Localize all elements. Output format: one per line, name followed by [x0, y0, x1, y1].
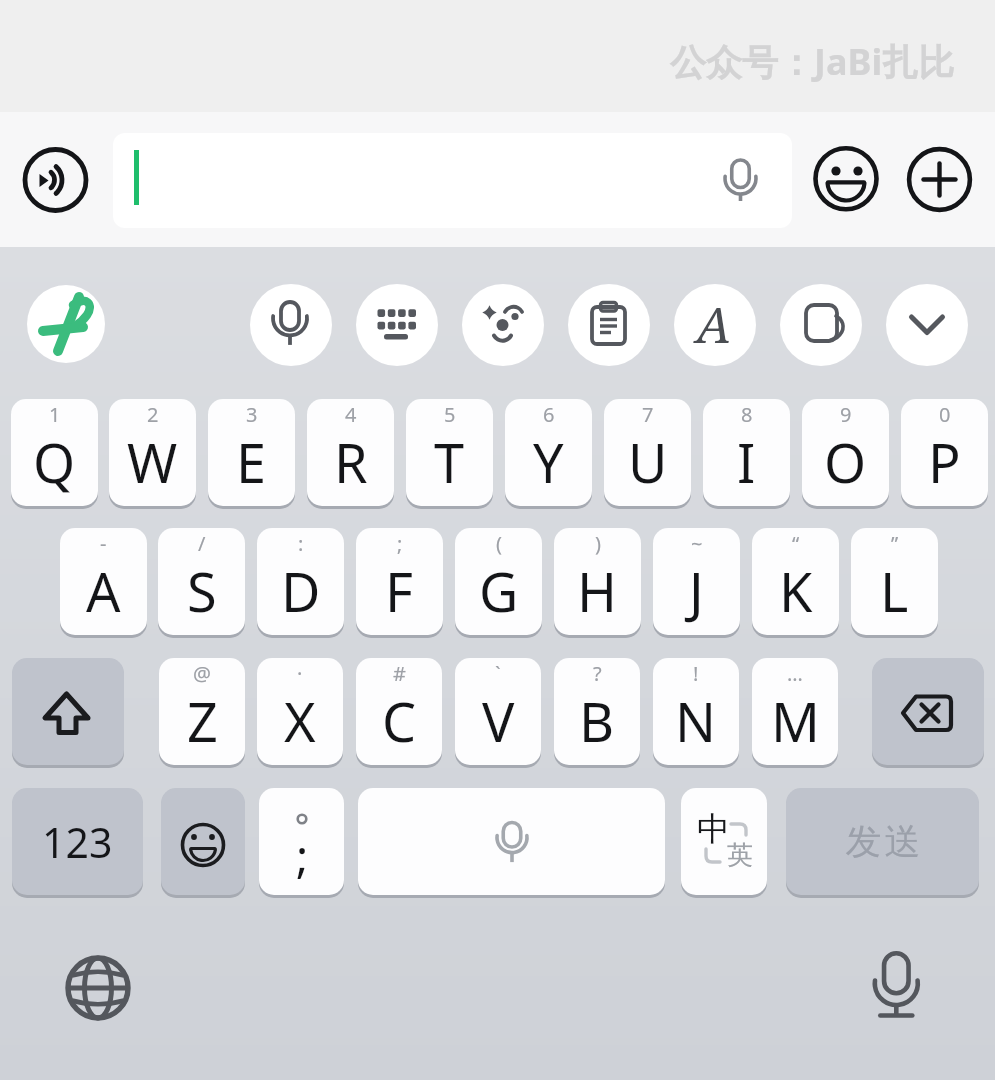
- staticText: 7: [642, 401, 654, 428]
- button[interactable]: ?: [554, 658, 640, 765]
- button[interactable]: [681, 788, 767, 895]
- staticText: Y: [533, 425, 564, 499]
- button[interactable]: 6: [505, 399, 592, 506]
- staticText: N: [675, 684, 717, 758]
- button[interactable]: 3: [208, 399, 295, 506]
- button[interactable]: `: [455, 658, 541, 765]
- staticText: 9: [840, 401, 852, 428]
- button[interactable]: [27, 285, 105, 363]
- staticText: O: [824, 425, 867, 499]
- staticText: 英: [727, 839, 753, 872]
- button[interactable]: [780, 284, 862, 366]
- staticText: W: [127, 425, 178, 499]
- staticText: Q: [33, 425, 76, 499]
- staticText: 1: [49, 401, 61, 428]
- staticText: V: [482, 684, 515, 758]
- button[interactable]: [113, 133, 792, 228]
- staticText: 公众号：JaBi扎比: [670, 37, 955, 86]
- button[interactable]: !: [653, 658, 739, 765]
- staticText: G: [479, 554, 519, 628]
- button[interactable]: [860, 946, 932, 1018]
- staticText: …: [787, 660, 803, 687]
- staticText: A: [86, 554, 121, 628]
- staticText: “: [792, 530, 800, 557]
- button[interactable]: [62, 952, 134, 1024]
- button[interactable]: 8: [703, 399, 790, 506]
- button[interactable]: [674, 284, 756, 366]
- staticText: U: [628, 425, 668, 499]
- staticText: 6: [543, 401, 555, 428]
- staticText: M: [771, 684, 820, 758]
- staticText: #: [393, 660, 406, 687]
- button[interactable]: 7: [604, 399, 691, 506]
- staticText: Z: [187, 684, 218, 758]
- staticText: 中: [697, 808, 730, 850]
- staticText: E: [236, 425, 267, 499]
- button[interactable]: ;: [356, 528, 443, 635]
- button[interactable]: [12, 658, 124, 765]
- staticText: P: [928, 425, 961, 499]
- button[interactable]: ;: [259, 788, 344, 895]
- button[interactable]: ~: [653, 528, 740, 635]
- button[interactable]: 9: [802, 399, 889, 506]
- button[interactable]: “: [752, 528, 839, 635]
- staticText: D: [281, 554, 321, 628]
- staticText: 8: [741, 401, 753, 428]
- staticText: 123: [42, 814, 113, 870]
- button[interactable]: :: [257, 528, 344, 635]
- button[interactable]: [568, 284, 650, 366]
- staticText: -: [100, 530, 107, 557]
- staticText: ~: [691, 530, 703, 557]
- button[interactable]: 5: [406, 399, 493, 506]
- button[interactable]: 4: [307, 399, 394, 506]
- button[interactable]: [872, 658, 984, 765]
- button[interactable]: (: [455, 528, 542, 635]
- staticText: L: [880, 554, 909, 628]
- button[interactable]: ·: [257, 658, 343, 765]
- button[interactable]: 1: [11, 399, 98, 506]
- staticText: 0: [939, 401, 951, 428]
- button[interactable]: 123: [12, 788, 143, 895]
- button[interactable]: [356, 284, 438, 366]
- button[interactable]: [910, 151, 970, 211]
- button[interactable]: 发送: [786, 788, 979, 895]
- staticText: A: [696, 290, 732, 358]
- button[interactable]: @: [159, 658, 245, 765]
- button[interactable]: …: [752, 658, 838, 765]
- staticText: B: [579, 684, 615, 758]
- staticText: F: [385, 554, 414, 628]
- staticText: 2: [147, 401, 159, 428]
- staticText: K: [779, 554, 813, 628]
- staticText: @: [193, 660, 211, 687]
- button[interactable]: ”: [851, 528, 938, 635]
- button[interactable]: [462, 284, 544, 366]
- button[interactable]: -: [60, 528, 147, 635]
- staticText: R: [334, 425, 368, 499]
- button[interactable]: /: [158, 528, 245, 635]
- button[interactable]: [250, 284, 332, 366]
- staticText: `: [495, 660, 501, 687]
- staticText: ?: [593, 660, 602, 687]
- staticText: /: [198, 530, 206, 557]
- button[interactable]: [161, 788, 245, 895]
- staticText: T: [434, 425, 465, 499]
- staticText: 5: [444, 401, 456, 428]
- button[interactable]: ): [554, 528, 641, 635]
- button[interactable]: [816, 151, 876, 211]
- staticText: X: [284, 684, 316, 758]
- button[interactable]: 2: [109, 399, 196, 506]
- staticText: C: [382, 684, 417, 758]
- staticText: J: [689, 554, 704, 628]
- button[interactable]: [886, 284, 968, 366]
- button[interactable]: [25, 147, 85, 207]
- staticText: :: [298, 530, 304, 557]
- button[interactable]: #: [356, 658, 442, 765]
- staticText: (: [496, 530, 502, 557]
- button[interactable]: [358, 788, 665, 895]
- staticText: 3: [246, 401, 258, 428]
- staticText: ·: [297, 660, 303, 687]
- staticText: ”: [891, 530, 899, 557]
- button[interactable]: 0: [901, 399, 988, 506]
- staticText: I: [737, 425, 756, 499]
- staticText: ): [595, 530, 601, 557]
